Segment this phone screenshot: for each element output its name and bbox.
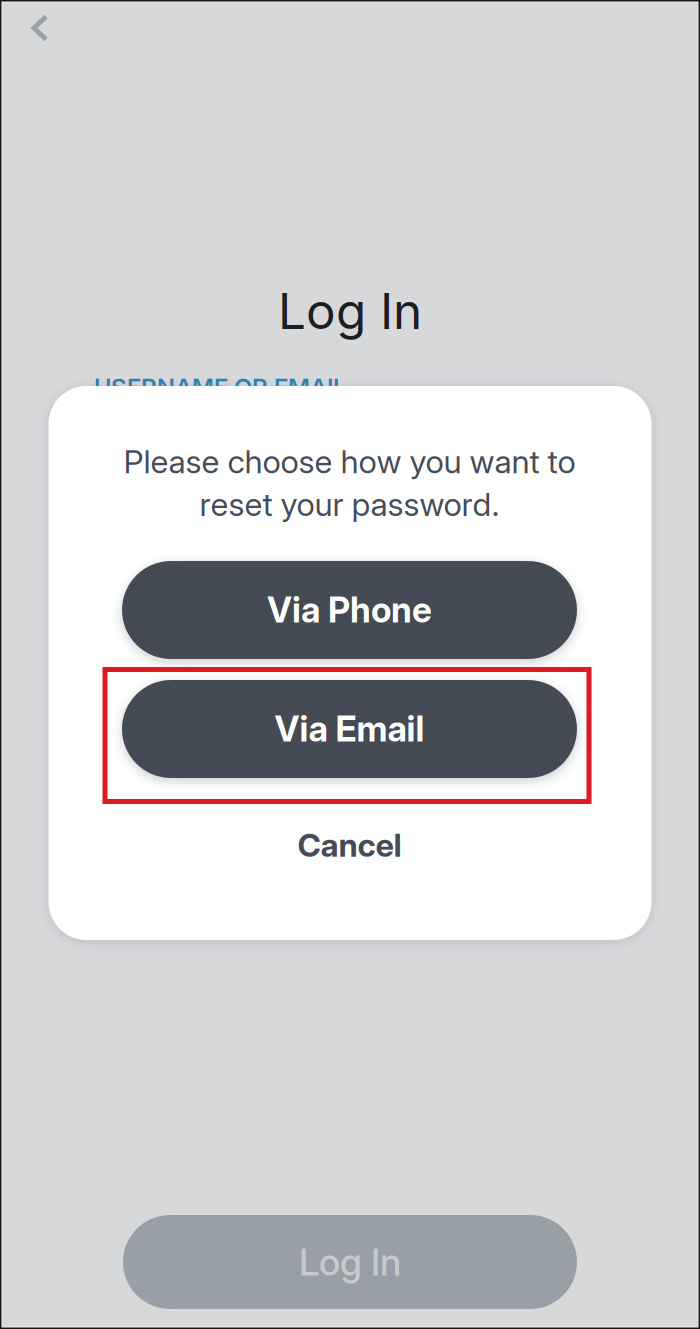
staticText: Please choose how you want to	[123, 442, 575, 481]
button[interactable]: Cancel	[239, 817, 459, 873]
staticText: Cancel	[297, 826, 401, 864]
button[interactable]: Via Email	[122, 680, 577, 778]
staticText: Log In	[278, 281, 422, 341]
staticText: USERNAME OR EMAIL	[94, 372, 346, 401]
staticText: Via Phone	[267, 589, 432, 631]
button[interactable]: Back	[12, 3, 68, 53]
staticText: reset your password.	[199, 485, 499, 524]
button[interactable]: Via Phone	[122, 561, 577, 659]
staticText: Via Email	[274, 708, 424, 750]
button[interactable]: Log In	[123, 1215, 577, 1309]
staticText: Log In	[299, 1239, 401, 1285]
